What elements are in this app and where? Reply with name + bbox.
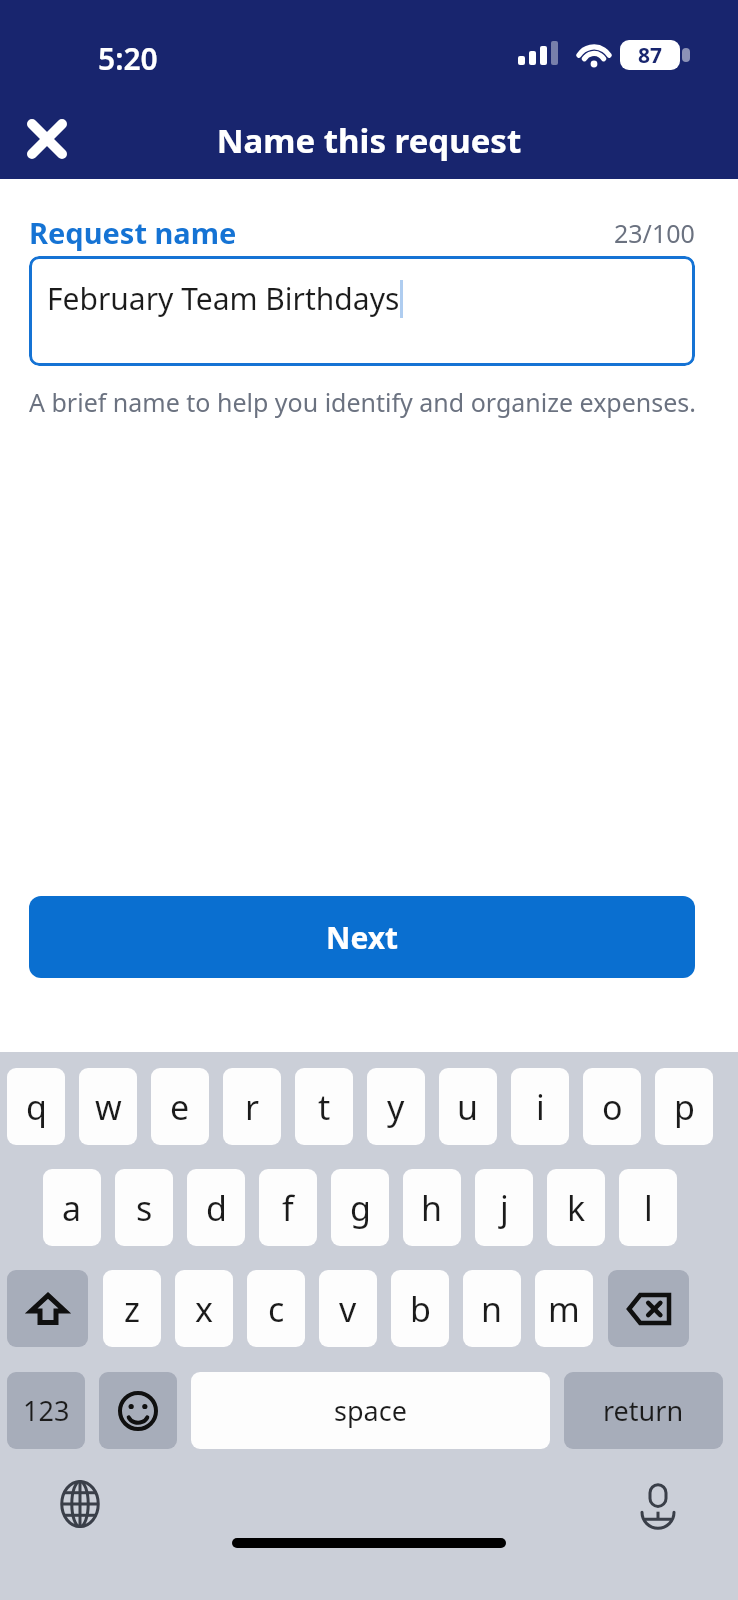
button[interactable]: v <box>319 1270 377 1347</box>
staticText: return <box>603 1392 684 1429</box>
button[interactable]: e <box>151 1068 209 1145</box>
button[interactable]: Emoji <box>99 1372 177 1449</box>
staticText: A brief name to help you identify and or… <box>29 385 697 419</box>
staticText: o <box>602 1084 623 1130</box>
staticText: x <box>195 1286 213 1332</box>
staticText: j <box>500 1185 509 1231</box>
staticText: 123 <box>23 1392 70 1429</box>
button[interactable]: Next <box>29 896 695 978</box>
button[interactable]: r <box>223 1068 281 1145</box>
button[interactable]: g <box>331 1169 389 1246</box>
button[interactable]: Close <box>14 106 80 172</box>
button[interactable]: Shift <box>7 1270 88 1347</box>
button[interactable]: s <box>115 1169 173 1246</box>
button[interactable]: u <box>439 1068 497 1145</box>
button[interactable]: h <box>403 1169 461 1246</box>
staticText: Request name <box>29 213 237 252</box>
staticText: t <box>318 1084 331 1130</box>
button[interactable]: j <box>475 1169 533 1246</box>
staticText: 87 <box>638 41 663 70</box>
staticText: c <box>268 1286 285 1332</box>
staticText: 23/100 <box>614 216 695 250</box>
staticText: d <box>206 1185 227 1231</box>
staticText: w <box>95 1084 122 1130</box>
staticText: q <box>26 1084 47 1130</box>
staticText: u <box>457 1084 479 1130</box>
button[interactable]: b <box>391 1270 449 1347</box>
staticText: g <box>350 1185 371 1231</box>
button[interactable]: y <box>367 1068 425 1145</box>
staticText: l <box>644 1185 653 1231</box>
button[interactable]: t <box>295 1068 353 1145</box>
staticText: 5:20 <box>98 38 158 79</box>
staticText: k <box>567 1185 586 1231</box>
button[interactable]: return <box>564 1372 723 1449</box>
staticText: h <box>421 1185 443 1231</box>
staticText: z <box>124 1286 140 1332</box>
button[interactable]: w <box>79 1068 137 1145</box>
button[interactable]: Backspace <box>608 1270 689 1347</box>
button[interactable]: m <box>535 1270 593 1347</box>
button[interactable]: z <box>103 1270 161 1347</box>
button[interactable]: f <box>259 1169 317 1246</box>
button[interactable]: p <box>655 1068 713 1145</box>
button[interactable]: d <box>187 1169 245 1246</box>
staticText: Name this request <box>0 118 738 163</box>
staticText: e <box>170 1084 190 1130</box>
staticText: i <box>536 1084 545 1130</box>
button[interactable]: space <box>191 1372 550 1449</box>
staticText: p <box>674 1084 695 1130</box>
staticText: n <box>481 1286 503 1332</box>
button[interactable]: k <box>547 1169 605 1246</box>
button[interactable]: Change keyboard language <box>48 1472 112 1536</box>
button[interactable]: Voice input <box>626 1472 690 1536</box>
staticText: space <box>334 1392 407 1429</box>
staticText: a <box>62 1185 82 1231</box>
staticText: b <box>410 1286 431 1332</box>
staticText: f <box>282 1185 294 1231</box>
button[interactable]: 123 <box>7 1372 85 1449</box>
staticText: r <box>245 1084 260 1130</box>
button[interactable]: c <box>247 1270 305 1347</box>
staticText: Next <box>326 917 399 958</box>
staticText: m <box>548 1286 580 1332</box>
button[interactable]: q <box>7 1068 65 1145</box>
button[interactable]: l <box>619 1169 677 1246</box>
staticText: February Team Birthdays <box>47 278 400 319</box>
button[interactable]: a <box>43 1169 101 1246</box>
staticText: s <box>136 1185 153 1231</box>
button[interactable]: o <box>583 1068 641 1145</box>
button[interactable]: i <box>511 1068 569 1145</box>
staticText: y <box>387 1084 405 1130</box>
button[interactable]: February Team Birthdays <box>29 256 695 366</box>
staticText: v <box>339 1286 357 1332</box>
button[interactable]: x <box>175 1270 233 1347</box>
button[interactable]: n <box>463 1270 521 1347</box>
